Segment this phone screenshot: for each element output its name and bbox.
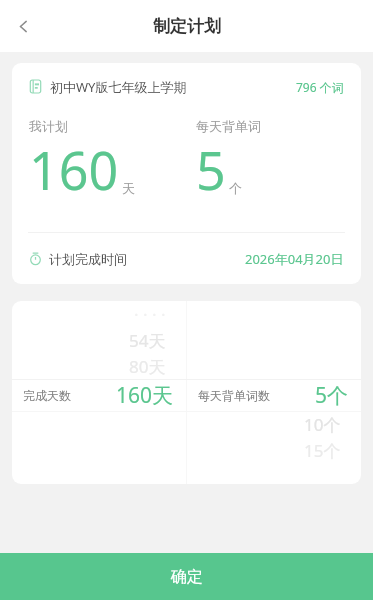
staticText: 初中WY版七年级上学期 bbox=[50, 78, 187, 96]
staticText: 15个 bbox=[304, 439, 341, 462]
staticText: 10个 bbox=[304, 413, 341, 436]
staticText: 80天 bbox=[129, 355, 166, 378]
staticText: 确定 bbox=[171, 567, 203, 587]
staticText: 制定计划 bbox=[153, 16, 221, 37]
staticText: 160 bbox=[29, 134, 119, 205]
button[interactable]: 完成天数 bbox=[12, 379, 186, 411]
staticText: 5个 bbox=[315, 381, 349, 410]
staticText: 54天 bbox=[129, 329, 166, 352]
staticText: 计划完成时间 bbox=[49, 251, 127, 267]
staticText: 个 bbox=[229, 180, 242, 196]
staticText: 160天 bbox=[116, 381, 174, 410]
staticText: 我计划 bbox=[29, 118, 68, 134]
staticText: 796 个词 bbox=[296, 79, 344, 95]
staticText: 5 bbox=[196, 134, 226, 205]
button[interactable]: Back bbox=[0, 3, 46, 49]
staticText: 每天背单词 bbox=[196, 118, 261, 134]
staticText: 天 bbox=[122, 180, 135, 196]
button[interactable]: 计划完成时间 bbox=[12, 233, 361, 284]
button[interactable]: 初中WY版七年级上学期 bbox=[12, 63, 361, 110]
button[interactable]: 每天背单词数 bbox=[187, 379, 361, 411]
button[interactable]: 确定 bbox=[0, 553, 373, 600]
staticText: 2026年04月20日 bbox=[245, 250, 344, 268]
staticText: 每天背单词数 bbox=[198, 388, 270, 403]
staticText: 完成天数 bbox=[23, 388, 71, 403]
